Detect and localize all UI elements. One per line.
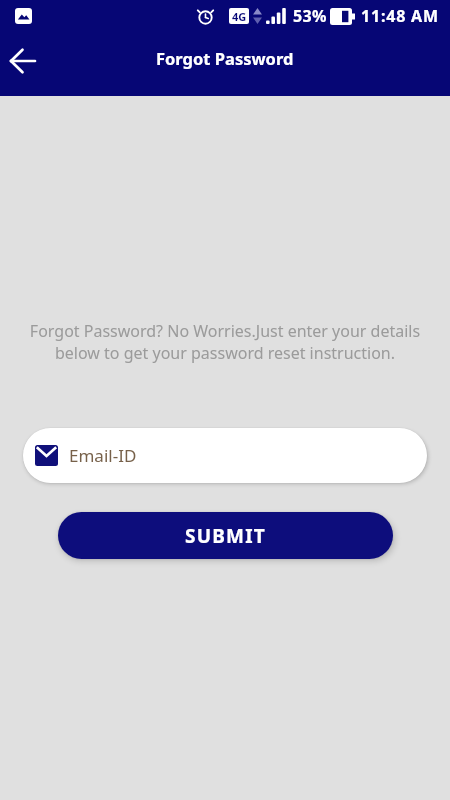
staticText: 11:48 AM	[361, 5, 439, 27]
staticText: Forgot Password? No Worries.Just enter y…	[0, 320, 450, 342]
button[interactable]: Email-ID	[23, 428, 427, 483]
staticText: SUBMIT	[185, 523, 266, 549]
staticText: below to get your password reset instruc…	[0, 342, 450, 364]
button[interactable]: SUBMIT	[58, 512, 393, 559]
staticText: 4G	[232, 9, 247, 24]
button[interactable]	[8, 46, 38, 76]
staticText: 53%	[293, 5, 327, 27]
staticText: Email-ID	[69, 444, 137, 467]
staticText: Forgot Password	[156, 47, 294, 69]
